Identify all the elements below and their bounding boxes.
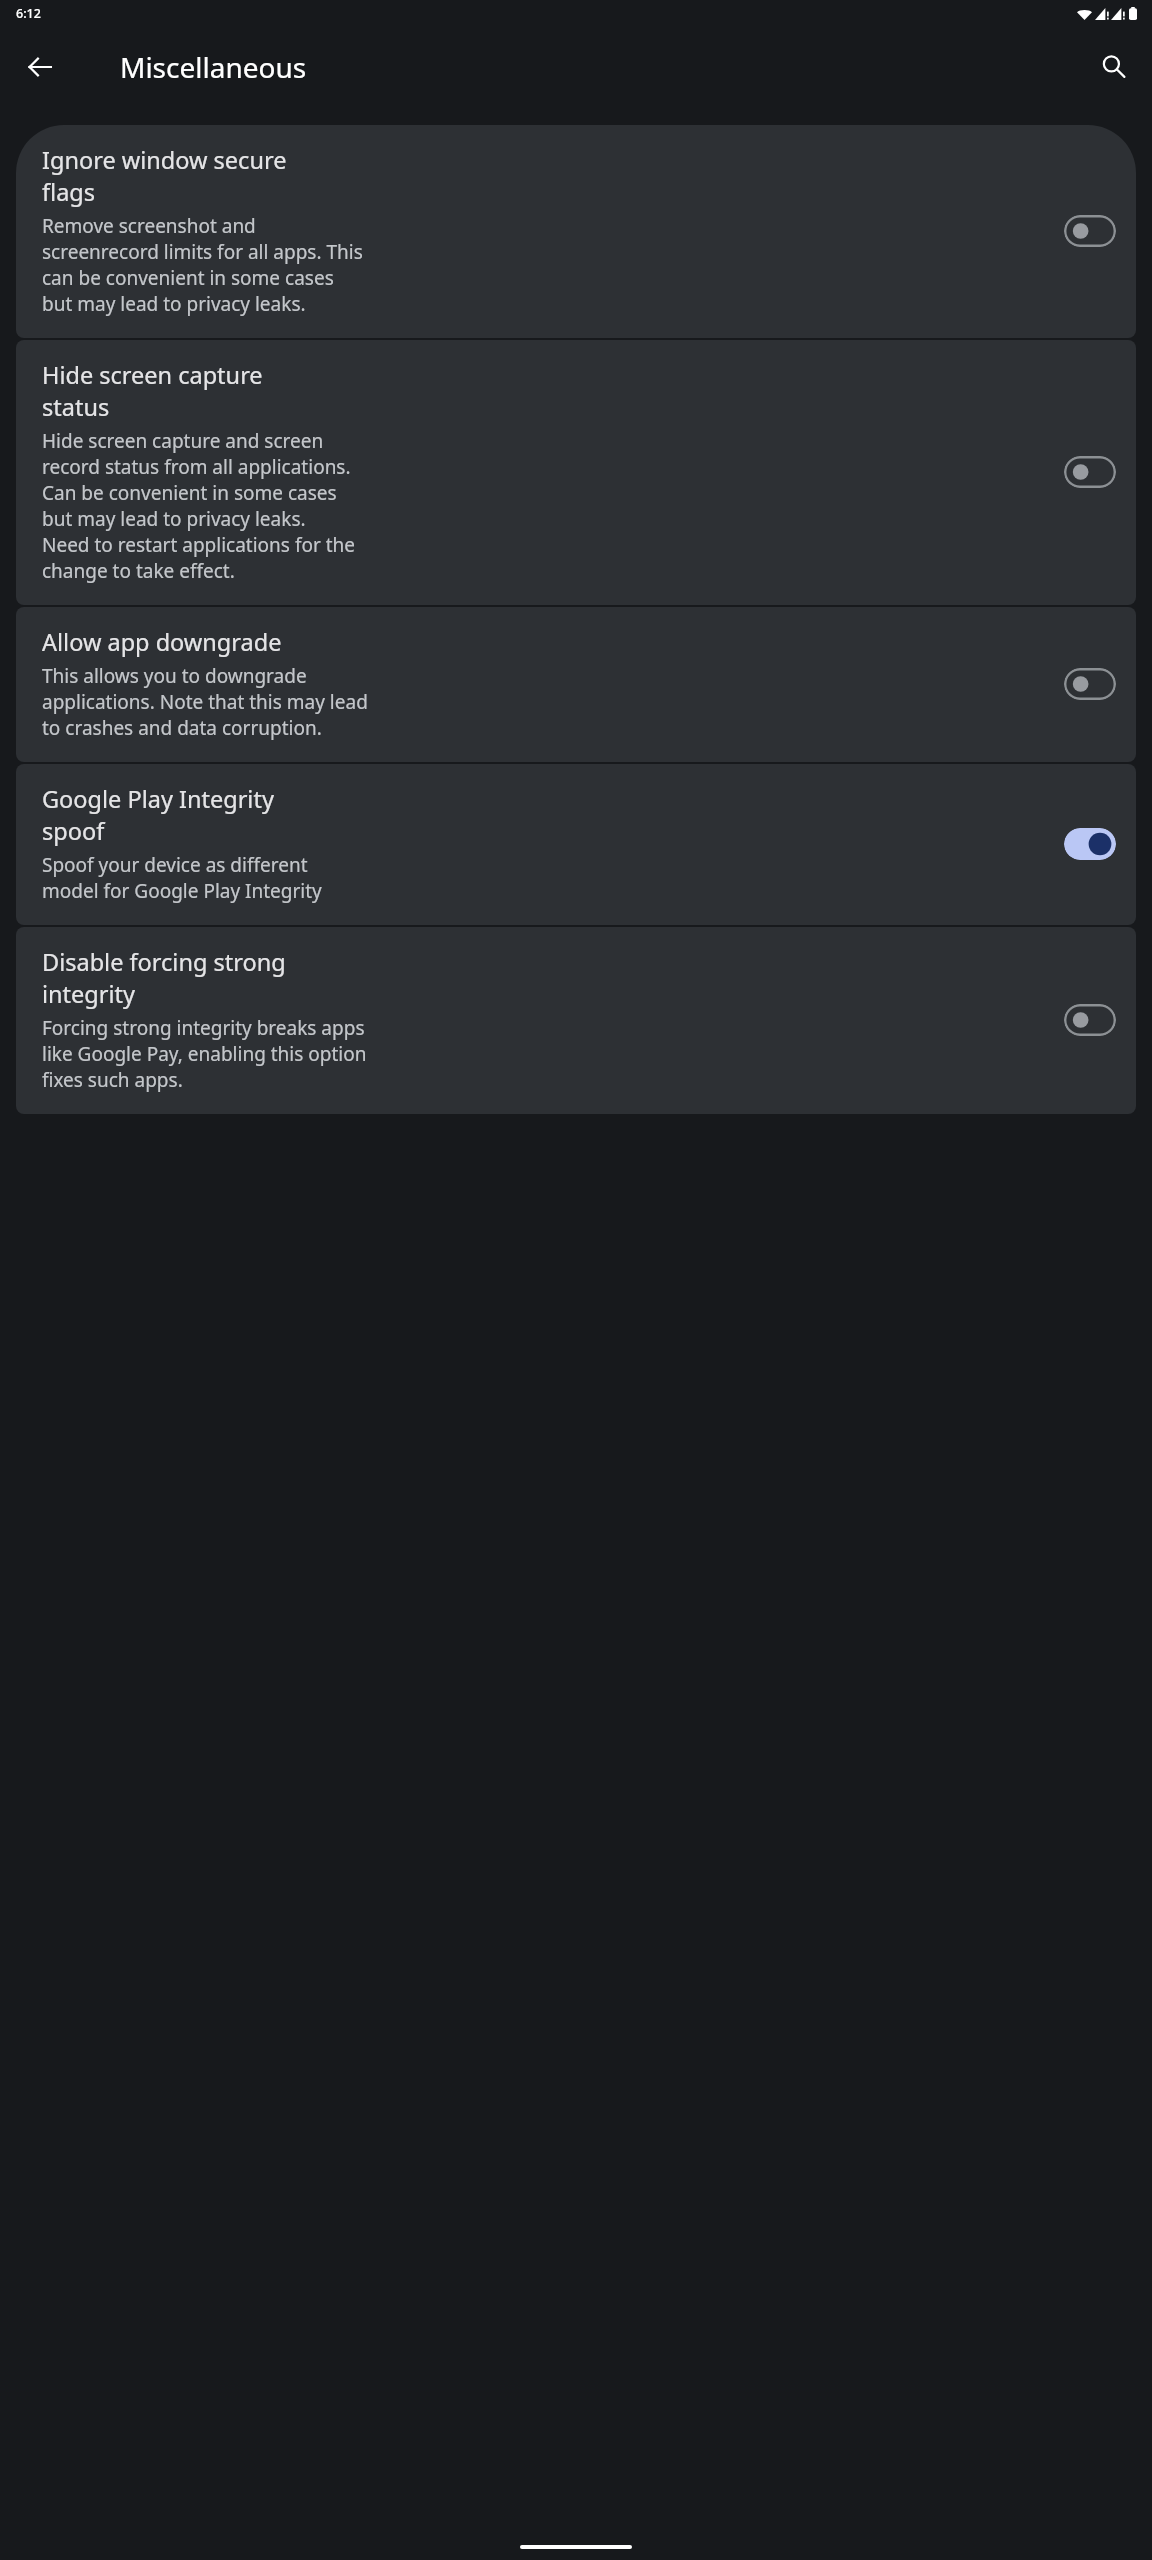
staticText: Disable forcing strong integrity xyxy=(42,946,286,1010)
staticText: Ignore window secure flags xyxy=(42,144,287,208)
button[interactable]: Toggle off xyxy=(1064,456,1116,488)
button[interactable]: Toggle off xyxy=(1064,215,1116,247)
button[interactable]: Google Play Integrity spoof xyxy=(16,764,1136,925)
button[interactable]: Toggle off xyxy=(1064,668,1116,700)
staticText: 6:12 xyxy=(16,5,41,22)
button[interactable]: Search xyxy=(1090,43,1138,91)
staticText: Google Play Integrity spoof xyxy=(42,783,274,847)
button[interactable]: Ignore window secure flags xyxy=(16,125,1136,338)
staticText: Remove screenshot and screenrecord limit… xyxy=(42,213,363,317)
button[interactable]: Toggle off xyxy=(1064,1004,1116,1036)
button[interactable]: Allow app downgrade xyxy=(16,607,1136,762)
staticText: Miscellaneous xyxy=(120,48,307,86)
button[interactable]: Back xyxy=(16,43,64,91)
staticText: Forcing strong integrity breaks apps lik… xyxy=(42,1015,367,1093)
button[interactable]: Hide screen capture status xyxy=(16,340,1136,605)
button[interactable]: Disable forcing strong integrity xyxy=(16,927,1136,1114)
staticText: Hide screen capture and screen record st… xyxy=(42,428,356,584)
button[interactable]: Toggle on xyxy=(1064,828,1116,860)
staticText: Spoof your device as different model for… xyxy=(42,852,322,904)
staticText: This allows you to downgrade application… xyxy=(42,663,368,741)
staticText: Hide screen capture status xyxy=(42,359,263,423)
staticText: Allow app downgrade xyxy=(42,626,282,658)
